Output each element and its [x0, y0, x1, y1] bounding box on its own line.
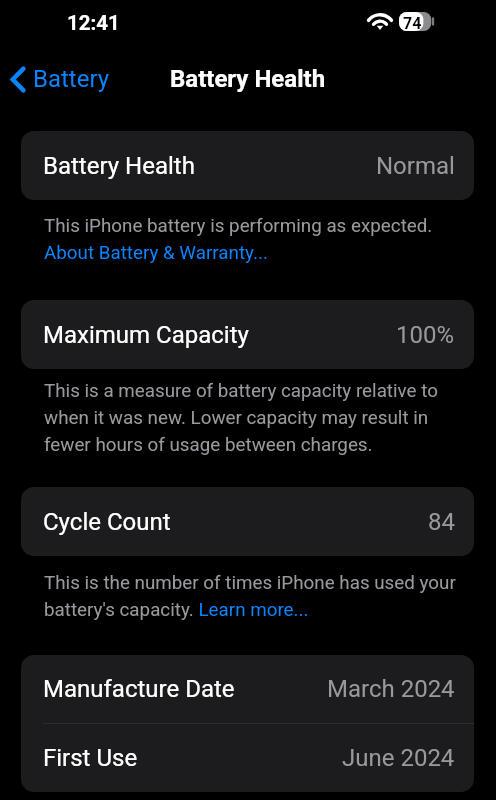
staticText: 74: [403, 14, 422, 33]
button[interactable]: Back: [4, 57, 116, 101]
staticText: March 2024: [327, 675, 455, 703]
button[interactable]: First Use: [21, 724, 474, 792]
staticText: Battery Health: [170, 65, 326, 93]
staticText: 12:41: [67, 11, 120, 35]
button[interactable]: Manufacture Date: [21, 655, 474, 723]
button[interactable]: Battery Health: [21, 131, 474, 200]
staticText: This is a measure of battery capacity re…: [44, 380, 456, 456]
button[interactable]: Cycle Count: [21, 487, 474, 556]
staticText: 84: [428, 508, 455, 536]
staticText: Battery: [33, 65, 110, 93]
staticText: Manufacture Date: [43, 675, 235, 703]
staticText: Normal: [376, 152, 455, 180]
button[interactable]: This is the number of times iPhone has u…: [44, 572, 456, 621]
staticText: 100%: [396, 321, 455, 349]
other: Back: [10, 66, 26, 93]
staticText: Cycle Count: [43, 508, 171, 536]
staticText: Maximum Capacity: [43, 321, 249, 349]
staticText: First Use: [43, 744, 138, 772]
staticText: Battery Health: [43, 152, 195, 180]
staticText: June 2024: [342, 744, 455, 772]
button[interactable]: Maximum Capacity: [21, 300, 474, 369]
button[interactable]: This iPhone battery is performing as exp…: [44, 215, 456, 264]
